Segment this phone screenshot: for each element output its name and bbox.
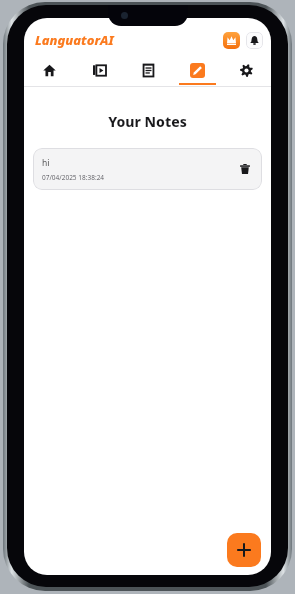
staticText: LanguatorAI [35, 31, 114, 49]
button[interactable]: Library [74, 57, 124, 83]
button[interactable]: Settings [222, 57, 271, 83]
staticText: 07/04/2025 18:38:24 [42, 173, 105, 182]
button[interactable]: Notifications [246, 32, 263, 49]
button[interactable]: Transcripts [124, 57, 173, 83]
button[interactable]: Delete note [235, 159, 255, 179]
button[interactable]: hi [33, 148, 262, 190]
staticText: hi [42, 157, 50, 169]
staticText: Your Notes [24, 112, 271, 131]
button[interactable]: Add note [227, 533, 261, 567]
button[interactable]: Premium [223, 32, 240, 49]
button[interactable]: Home [24, 57, 74, 83]
button[interactable]: Notes [173, 57, 222, 83]
